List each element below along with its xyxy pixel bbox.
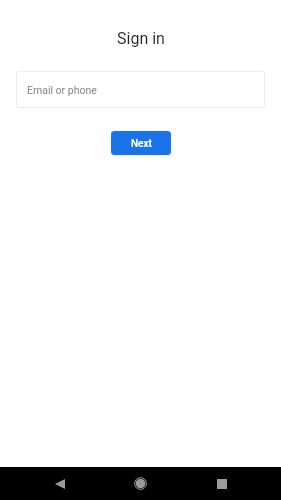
button[interactable]: Next	[111, 131, 171, 155]
button[interactable]: Email or phone	[16, 71, 265, 108]
staticText: Next	[131, 138, 152, 150]
button[interactable]: Back	[37, 467, 82, 500]
staticText: Email or phone	[27, 84, 97, 96]
button[interactable]: Home	[118, 467, 163, 500]
staticText: Sign in	[117, 29, 165, 48]
button[interactable]: Recent apps	[199, 467, 244, 500]
